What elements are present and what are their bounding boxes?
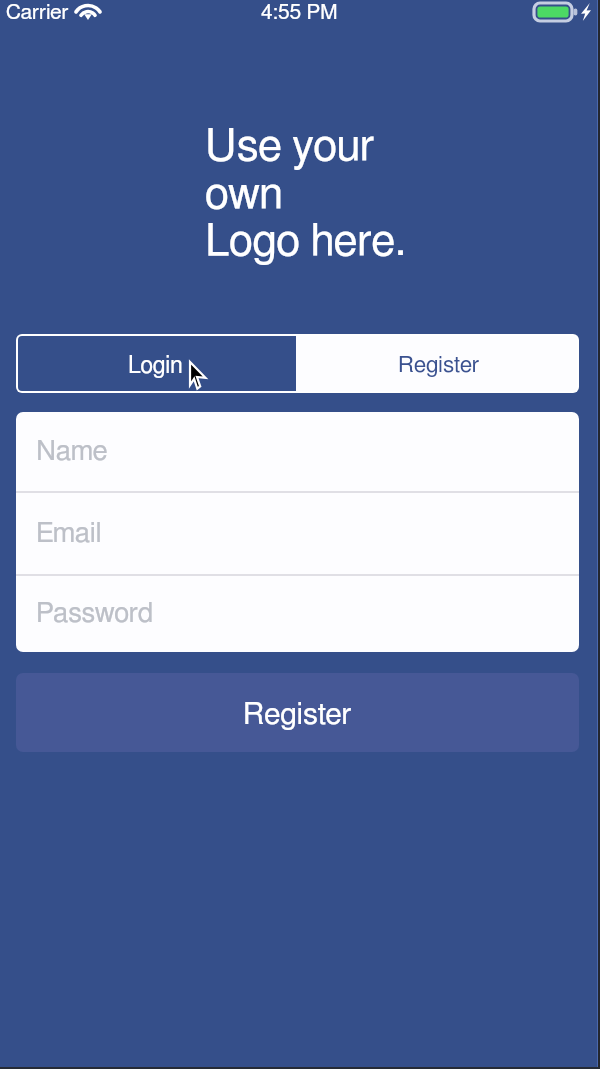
other: Wi-Fi signal bbox=[76, 3, 100, 20]
staticText: Register bbox=[398, 354, 480, 377]
staticText: Use your own Logo here. bbox=[205, 125, 406, 264]
button[interactable]: Email bbox=[16, 493, 579, 574]
button[interactable]: Register bbox=[16, 673, 579, 752]
staticText: Email bbox=[36, 520, 102, 548]
other: Battery full, charging bbox=[533, 2, 578, 22]
staticText: Carrier bbox=[6, 2, 69, 23]
staticText: Password bbox=[36, 600, 154, 628]
button[interactable]: Register bbox=[296, 336, 577, 391]
other: Charging bbox=[581, 3, 591, 21]
staticText: Login bbox=[128, 355, 183, 378]
staticText: 4:55 PM bbox=[261, 2, 338, 23]
staticText: Register bbox=[243, 700, 352, 730]
button[interactable]: Password bbox=[16, 576, 579, 652]
staticText: Name bbox=[36, 438, 108, 466]
button[interactable]: Login bbox=[18, 336, 296, 391]
button[interactable]: Name bbox=[16, 412, 579, 491]
